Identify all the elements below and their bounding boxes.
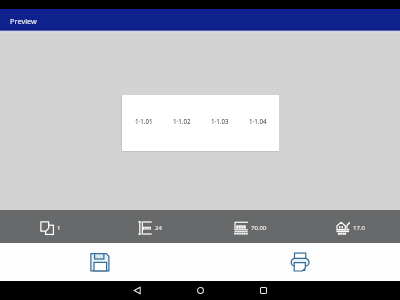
- button[interactable]: Page width: [100, 210, 200, 243]
- staticText: 70.00: [251, 224, 267, 232]
- button[interactable]: Recent apps: [232, 281, 295, 300]
- button[interactable]: Back: [105, 281, 169, 300]
- staticText: 1·1.04: [249, 117, 267, 125]
- button[interactable]: 1·1.01: [122, 95, 279, 151]
- button[interactable]: Print: [200, 243, 400, 281]
- staticText: 1·1.03: [211, 117, 229, 125]
- button[interactable]: Save: [0, 243, 200, 281]
- staticText: 24: [155, 224, 162, 232]
- button[interactable]: Copies: [0, 210, 100, 243]
- button[interactable]: Print speed: [300, 210, 400, 243]
- button[interactable]: Page height in mm: [200, 210, 300, 243]
- staticText: 1·1.02: [173, 117, 191, 125]
- staticText: 1: [57, 224, 61, 232]
- staticText: 17.0: [353, 224, 365, 232]
- staticText: 1·1.01: [135, 117, 153, 125]
- button[interactable]: Home: [169, 281, 232, 300]
- staticText: Preview: [10, 16, 37, 26]
